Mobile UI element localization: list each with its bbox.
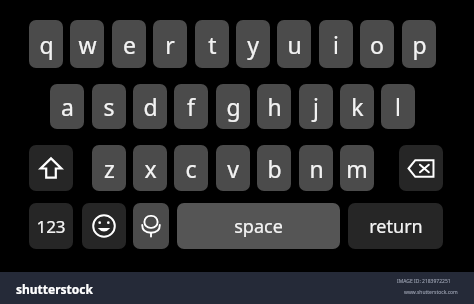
staticText: q bbox=[39, 29, 54, 60]
button[interactable]: return bbox=[348, 203, 443, 249]
button[interactable]: c bbox=[174, 145, 208, 191]
button[interactable]: u bbox=[277, 20, 311, 68]
staticText: m bbox=[346, 153, 368, 184]
staticText: k bbox=[351, 91, 364, 122]
staticText: IMAGE ID: 2183972251 bbox=[397, 278, 451, 285]
staticText: return bbox=[369, 214, 423, 239]
button[interactable]: f bbox=[174, 84, 208, 129]
button[interactable]: t bbox=[195, 20, 229, 68]
staticText: u bbox=[287, 29, 302, 60]
button[interactable]: n bbox=[299, 145, 333, 191]
staticText: r bbox=[165, 29, 175, 60]
button[interactable]: a bbox=[50, 84, 84, 129]
staticText: l bbox=[395, 91, 401, 122]
button[interactable]: b bbox=[257, 145, 291, 191]
button[interactable]: Emoji bbox=[82, 203, 126, 249]
button[interactable]: j bbox=[299, 84, 333, 129]
staticText: f bbox=[187, 91, 195, 122]
button[interactable]: w bbox=[70, 20, 104, 68]
button[interactable]: x bbox=[133, 145, 167, 191]
button[interactable]: h bbox=[257, 84, 291, 129]
staticText: c bbox=[185, 153, 197, 184]
button[interactable]: Dictate bbox=[133, 203, 169, 249]
staticText: s bbox=[103, 91, 115, 122]
button[interactable]: z bbox=[92, 145, 126, 191]
staticText: shutterstock bbox=[16, 281, 93, 297]
staticText: e bbox=[123, 29, 136, 60]
button[interactable]: Shift bbox=[29, 145, 73, 191]
button[interactable]: d bbox=[133, 84, 167, 129]
button[interactable]: m bbox=[340, 145, 374, 191]
button[interactable]: g bbox=[216, 84, 250, 129]
staticText: y bbox=[247, 29, 259, 60]
button[interactable]: r bbox=[153, 20, 187, 68]
staticText: o bbox=[370, 29, 384, 60]
staticText: h bbox=[267, 91, 282, 122]
staticText: j bbox=[313, 91, 319, 122]
button[interactable]: k bbox=[340, 84, 374, 129]
button[interactable]: space bbox=[177, 203, 340, 249]
staticText: a bbox=[61, 91, 74, 122]
staticText: i bbox=[333, 29, 339, 60]
button[interactable]: p bbox=[402, 20, 436, 68]
button[interactable]: o bbox=[360, 20, 394, 68]
staticText: g bbox=[226, 91, 241, 122]
staticText: d bbox=[143, 91, 158, 122]
staticText: v bbox=[227, 153, 239, 184]
button[interactable]: q bbox=[29, 20, 63, 68]
staticText: t bbox=[208, 29, 217, 60]
button[interactable]: Backspace bbox=[399, 145, 443, 191]
staticText: n bbox=[309, 153, 324, 184]
button[interactable]: e bbox=[112, 20, 146, 68]
staticText: w bbox=[78, 29, 97, 60]
staticText: 123 bbox=[36, 215, 66, 238]
button[interactable]: v bbox=[216, 145, 250, 191]
button[interactable]: 123 bbox=[29, 203, 73, 249]
staticText: z bbox=[104, 153, 115, 184]
button[interactable]: s bbox=[92, 84, 126, 129]
staticText: space bbox=[234, 214, 283, 239]
button[interactable]: i bbox=[319, 20, 353, 68]
staticText: www.shutterstock.com bbox=[404, 289, 458, 296]
button[interactable]: y bbox=[236, 20, 270, 68]
staticText: x bbox=[144, 153, 157, 184]
button[interactable]: l bbox=[381, 84, 415, 129]
staticText: b bbox=[267, 153, 282, 184]
staticText: p bbox=[412, 29, 427, 60]
